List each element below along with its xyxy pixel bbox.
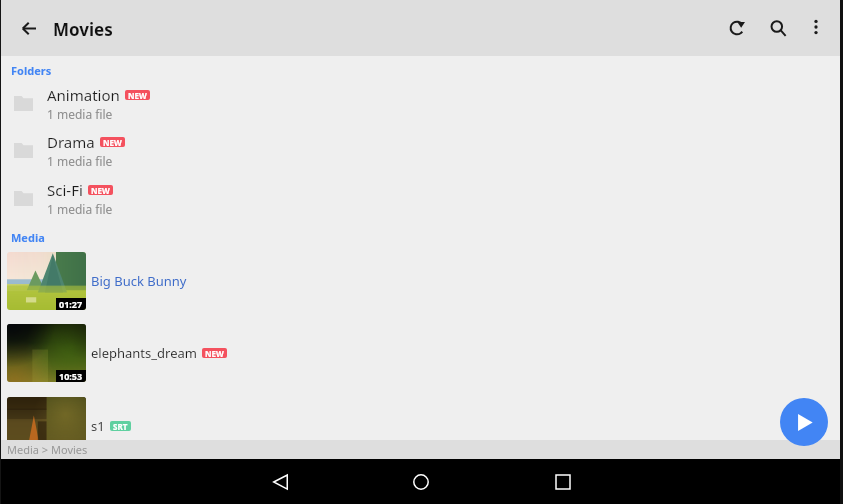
staticText: 10:53 <box>59 370 83 382</box>
staticText: Folders <box>11 63 52 78</box>
staticText: 1 media file <box>47 106 113 122</box>
staticText: NEW <box>128 90 147 100</box>
button[interactable]: Animation <box>0 80 843 127</box>
staticText: NEW <box>91 185 110 195</box>
staticText: Media <box>11 230 45 245</box>
button[interactable]: 01:27 <box>0 245 843 317</box>
staticText: s1 <box>91 417 105 435</box>
staticText: Sci-Fi <box>47 180 83 200</box>
button[interactable]: Play <box>780 398 828 446</box>
staticText: 1 media file <box>47 153 113 169</box>
staticText: Animation <box>47 85 120 105</box>
staticText: Big Buck Bunny <box>91 272 187 290</box>
staticText: 1 media file <box>47 201 113 217</box>
button[interactable]: Refresh <box>721 12 753 44</box>
staticText: Media > Movies <box>7 442 88 457</box>
staticText: 01:27 <box>59 298 83 310</box>
button[interactable]: 10:53 <box>0 317 843 389</box>
button[interactable]: More options <box>802 13 830 41</box>
staticText: SRT <box>113 421 128 431</box>
button[interactable]: Drama <box>0 127 843 174</box>
staticText: NEW <box>103 137 122 147</box>
staticText: elephants_dream <box>91 344 197 362</box>
button[interactable]: Recents <box>527 459 599 504</box>
staticText: Drama <box>47 132 95 152</box>
button[interactable]: Search <box>762 12 794 44</box>
button[interactable]: Back <box>14 13 44 43</box>
staticText: NEW <box>205 348 224 358</box>
button[interactable]: Back <box>244 459 316 504</box>
button[interactable]: Home <box>385 459 457 504</box>
button[interactable]: s1 <box>0 390 843 462</box>
button[interactable]: Sci-Fi <box>0 175 843 222</box>
staticText: Movies <box>53 18 113 41</box>
